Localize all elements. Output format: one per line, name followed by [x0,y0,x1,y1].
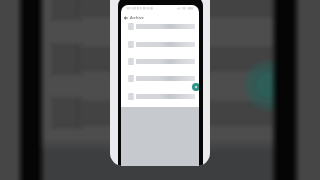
button[interactable] [121,75,199,82]
button[interactable] [121,58,199,65]
button[interactable] [121,41,199,48]
button[interactable] [121,23,199,30]
staticText: Archive [130,15,144,20]
button[interactable]: Compose [192,83,199,91]
button[interactable] [121,93,199,100]
button[interactable]: Navigate up [122,14,129,21]
